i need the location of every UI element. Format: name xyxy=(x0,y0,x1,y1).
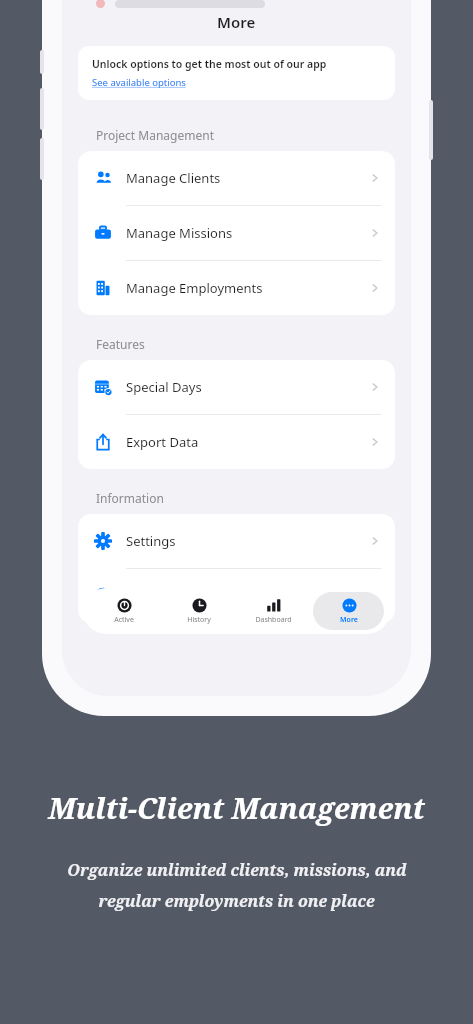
staticText: Organize unlimited clients, missions, an… xyxy=(67,859,407,881)
staticText: Information xyxy=(96,490,164,506)
button[interactable]: Export Data xyxy=(78,415,395,469)
staticText: Special Days xyxy=(126,378,202,396)
staticText: More xyxy=(340,615,358,625)
button[interactable]: About xyxy=(78,569,395,623)
staticText: About xyxy=(126,587,163,605)
staticText: Settings xyxy=(126,532,176,550)
staticText: Multi-Client Management xyxy=(48,788,425,827)
staticText: Features xyxy=(96,336,145,352)
button[interactable]: Dashboard xyxy=(238,592,309,630)
button[interactable]: Manage Clients xyxy=(78,151,395,205)
staticText: Manage Missions xyxy=(126,224,233,242)
staticText: More xyxy=(217,12,256,32)
button[interactable]: Unlock options to get the most out of ou… xyxy=(78,46,395,100)
button[interactable]: Settings xyxy=(78,514,395,568)
staticText: Project Management xyxy=(96,127,214,143)
staticText: regular employments in one place xyxy=(98,890,375,912)
button[interactable]: Special Days xyxy=(78,360,395,414)
staticText: See available options xyxy=(92,76,186,89)
staticText: History xyxy=(187,615,211,625)
button[interactable]: Active xyxy=(89,592,159,630)
button[interactable]: More xyxy=(313,592,384,630)
button[interactable]: History xyxy=(163,592,234,630)
button[interactable]: Manage Missions xyxy=(78,206,395,260)
staticText: Unlock options to get the most out of ou… xyxy=(92,57,327,71)
button[interactable]: Manage Employments xyxy=(78,261,395,315)
staticText: Active xyxy=(114,615,134,625)
staticText: Export Data xyxy=(126,433,199,451)
staticText: Manage Clients xyxy=(126,169,221,187)
staticText: Dashboard xyxy=(255,615,292,625)
staticText: Manage Employments xyxy=(126,279,263,297)
